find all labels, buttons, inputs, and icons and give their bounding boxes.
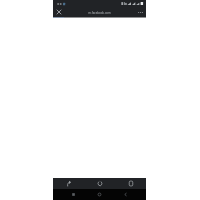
button[interactable]: Reload	[94, 178, 105, 189]
button[interactable]: Close	[55, 8, 63, 16]
button[interactable]: Share	[63, 178, 74, 189]
button[interactable]: Recent apps	[68, 189, 79, 200]
button[interactable]: More options	[136, 8, 144, 16]
staticText: m.facebook.com	[88, 11, 111, 15]
button[interactable]: Home	[94, 189, 105, 200]
button[interactable]: Open in browser	[125, 178, 136, 189]
button[interactable]: Back	[120, 189, 131, 200]
button[interactable]: m.facebook.com	[88, 10, 111, 15]
